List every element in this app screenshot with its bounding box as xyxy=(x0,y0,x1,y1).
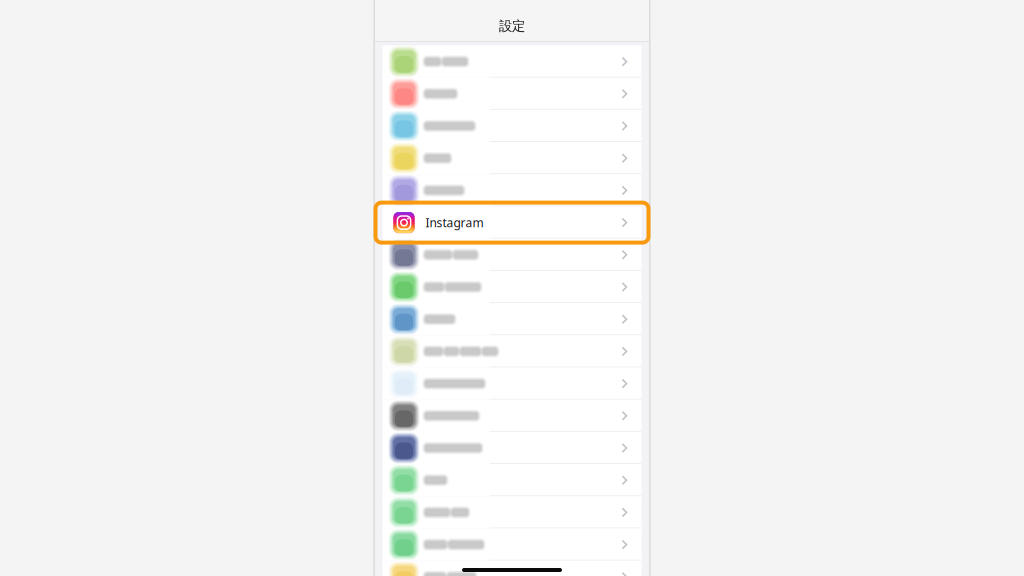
button[interactable] xyxy=(382,271,641,303)
button[interactable] xyxy=(382,335,641,367)
button[interactable] xyxy=(382,142,641,174)
button[interactable] xyxy=(382,45,641,78)
staticText: 設定 xyxy=(499,18,525,34)
button[interactable] xyxy=(382,174,641,206)
button[interactable] xyxy=(382,303,641,335)
button[interactable] xyxy=(382,400,641,432)
button[interactable] xyxy=(382,239,641,271)
button[interactable] xyxy=(382,367,641,400)
button[interactable] xyxy=(382,496,641,528)
button[interactable] xyxy=(382,464,641,496)
button[interactable] xyxy=(382,432,641,464)
button[interactable] xyxy=(382,528,641,561)
button[interactable] xyxy=(382,110,641,142)
button[interactable] xyxy=(382,78,641,110)
staticText: Instagram xyxy=(425,215,483,230)
button[interactable] xyxy=(382,561,641,576)
button[interactable]: Instagram xyxy=(382,206,641,239)
